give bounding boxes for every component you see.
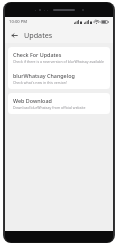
staticText: Updates [24, 30, 53, 40]
staticText: Check For Updates [13, 51, 62, 58]
staticText: 10:00 PM [9, 19, 28, 25]
staticText: Check what's new in this version! [13, 80, 67, 85]
staticText: Download blurWhatsay from official websi… [13, 105, 86, 110]
button[interactable]: blurWhatsay Changelog [8, 68, 110, 89]
button[interactable]: Back [8, 29, 20, 41]
button[interactable]: Check For Updates [8, 47, 110, 68]
button[interactable]: Web Download [8, 93, 110, 114]
staticText: Check if there is a new version of blurW… [13, 59, 104, 64]
staticText: Web Download [13, 97, 52, 104]
staticText: blurWhatsay Changelog [13, 72, 75, 79]
